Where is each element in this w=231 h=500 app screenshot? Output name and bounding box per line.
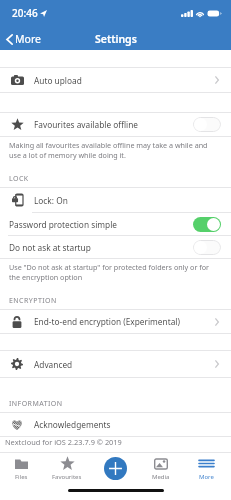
- staticText: Acknowledgements: [34, 419, 111, 430]
- staticText: Favourites: [52, 473, 82, 481]
- staticText: the encryption option: [9, 272, 83, 282]
- staticText: Favourites available offline: [34, 119, 139, 130]
- staticText: LOCK: [9, 174, 29, 184]
- staticText: Auto upload: [34, 75, 82, 86]
- button[interactable]: Switch off: [193, 117, 221, 132]
- staticText: Making all favourites available offline …: [9, 140, 208, 150]
- staticText: Nextcloud for iOS 2.23.7.9 © 2019: [5, 437, 122, 447]
- staticText: Media: [152, 473, 170, 481]
- button[interactable]: Switch on: [193, 217, 221, 232]
- button[interactable]: More: [184, 456, 228, 481]
- button[interactable]: End-to-end encryption (Experimental): [0, 310, 231, 333]
- staticText: 20:46: [12, 6, 38, 20]
- button[interactable]: Acknowledgements: [0, 413, 231, 436]
- staticText: More: [15, 32, 41, 46]
- button[interactable]: Advanced: [0, 351, 231, 377]
- button[interactable]: Media: [139, 456, 183, 481]
- staticText: use a lot of memory while doing it.: [9, 150, 126, 160]
- staticText: Password protection simple: [9, 219, 117, 230]
- staticText: ENCRYPTION: [9, 296, 57, 306]
- button[interactable]: Lock: On: [0, 188, 231, 212]
- staticText: Lock: On: [34, 195, 68, 206]
- button[interactable]: Add: [104, 457, 127, 480]
- staticText: Files: [15, 473, 28, 481]
- staticText: INFORMATION: [9, 399, 63, 409]
- button[interactable]: Favourites available offline: [0, 113, 231, 136]
- staticText: Use "Do not ask at startup" for protecte…: [9, 262, 210, 272]
- button[interactable]: Switch off: [193, 240, 221, 255]
- button[interactable]: Favourites: [45, 456, 89, 481]
- button[interactable]: Auto upload: [0, 68, 231, 92]
- staticText: End-to-end encryption (Experimental): [34, 316, 180, 327]
- button[interactable]: More: [0, 30, 49, 48]
- staticText: Settings: [95, 32, 137, 46]
- staticText: Advanced: [34, 359, 73, 370]
- button[interactable]: Files: [0, 456, 43, 481]
- staticText: Do not ask at startup: [9, 242, 91, 253]
- button[interactable]: Do not ask at startup: [0, 236, 231, 258]
- staticText: More: [199, 473, 214, 481]
- button[interactable]: Password protection simple: [0, 213, 231, 235]
